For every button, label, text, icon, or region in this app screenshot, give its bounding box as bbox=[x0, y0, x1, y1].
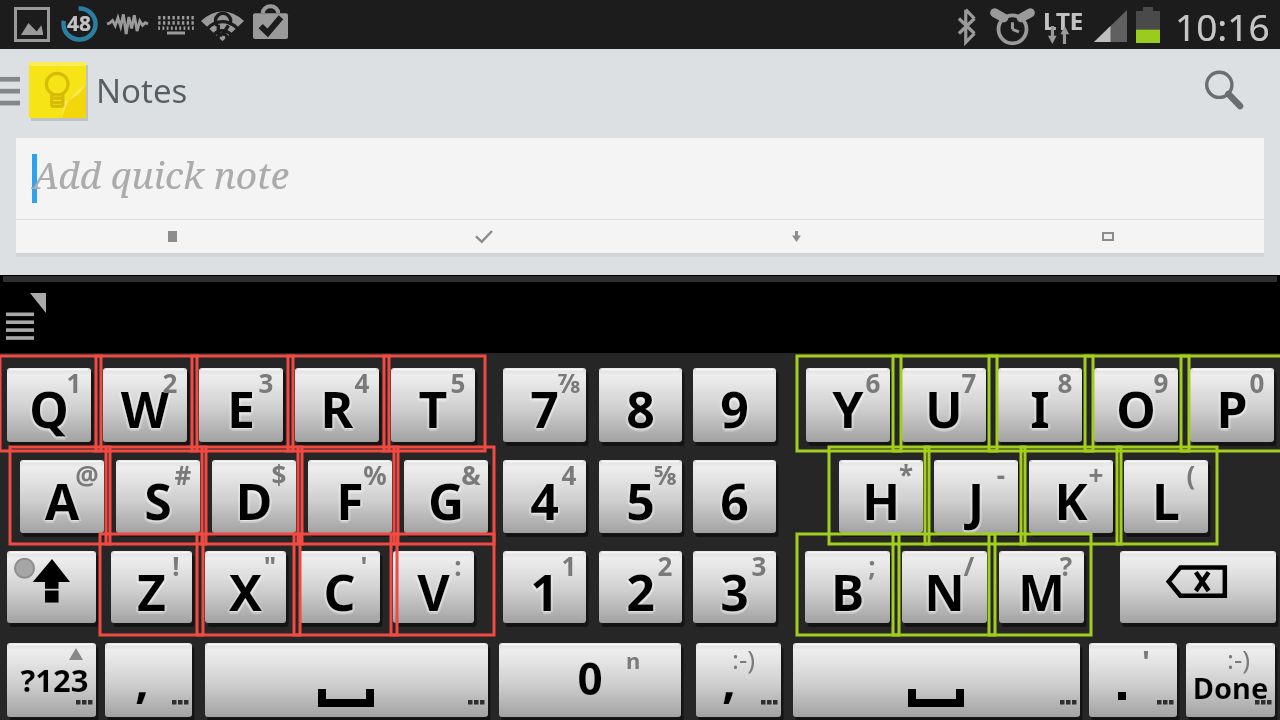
button[interactable]: N bbox=[902, 551, 987, 623]
button[interactable]: K bbox=[1029, 460, 1113, 533]
staticText: " bbox=[242, 548, 298, 583]
button[interactable]: commasm bbox=[696, 643, 781, 717]
button[interactable]: X bbox=[205, 551, 286, 623]
staticText: I bbox=[998, 375, 1082, 443]
staticText: Q bbox=[7, 378, 91, 446]
staticText: 6 bbox=[693, 467, 776, 535]
button[interactable]: F bbox=[308, 460, 392, 533]
staticText: 6 bbox=[691, 468, 774, 536]
button[interactable]: P bbox=[1190, 368, 1274, 442]
staticText: # bbox=[155, 457, 211, 492]
button[interactable]: U bbox=[902, 368, 986, 442]
button[interactable]: 9 bbox=[693, 368, 776, 442]
button[interactable]: 3 bbox=[693, 551, 776, 623]
staticText: W bbox=[101, 376, 185, 444]
button[interactable]: space bbox=[205, 643, 488, 717]
staticText: O bbox=[1096, 376, 1180, 444]
staticText: Z bbox=[111, 558, 192, 626]
staticText: % bbox=[347, 457, 403, 492]
staticText: Y bbox=[804, 376, 888, 444]
staticText: 7 bbox=[941, 365, 997, 400]
staticText: D bbox=[212, 470, 296, 538]
button[interactable]: H bbox=[839, 460, 923, 533]
button[interactable]: W bbox=[103, 368, 187, 442]
button[interactable]: S bbox=[116, 460, 200, 533]
staticText: K bbox=[1029, 467, 1113, 535]
staticText: W bbox=[103, 378, 187, 446]
staticText: ( bbox=[1163, 457, 1219, 492]
staticText: 5 bbox=[599, 467, 682, 535]
staticText: M bbox=[997, 559, 1082, 627]
staticText: ; bbox=[844, 548, 900, 583]
button[interactable]: 7 bbox=[503, 368, 586, 442]
button[interactable]: backspace bbox=[1120, 551, 1276, 623]
staticText: Z bbox=[113, 559, 194, 627]
button[interactable]: 6 bbox=[693, 460, 776, 533]
staticText: C bbox=[299, 561, 380, 629]
button[interactable]: 5 bbox=[599, 460, 682, 533]
staticText: A bbox=[20, 470, 104, 538]
button[interactable]: Open navigation drawer bbox=[0, 49, 34, 138]
button[interactable]: 4 bbox=[503, 460, 586, 533]
staticText: L bbox=[1126, 468, 1210, 536]
button[interactable]: comma bbox=[105, 643, 192, 717]
staticText: F bbox=[310, 468, 394, 536]
staticText: V bbox=[391, 559, 472, 627]
button[interactable]: Search bbox=[1185, 49, 1280, 138]
staticText: B bbox=[803, 559, 888, 627]
button[interactable]: M bbox=[999, 551, 1084, 623]
button[interactable]: 8 bbox=[599, 368, 682, 442]
button[interactable]: O bbox=[1094, 368, 1178, 442]
staticText: ' bbox=[1142, 641, 1150, 682]
button[interactable]: shift bbox=[7, 551, 96, 623]
staticText: Q bbox=[5, 376, 89, 444]
staticText: G bbox=[404, 467, 488, 535]
button[interactable]: Add quick note bbox=[16, 138, 1264, 219]
button[interactable]: V bbox=[393, 551, 474, 623]
button[interactable]: 1 bbox=[503, 551, 586, 623]
staticText: H bbox=[841, 468, 925, 536]
button[interactable]: ?123 bbox=[7, 643, 96, 717]
button[interactable]: E bbox=[199, 368, 283, 442]
staticText: Z bbox=[111, 561, 192, 629]
staticText: J bbox=[934, 470, 1018, 538]
staticText: 9 bbox=[691, 376, 774, 444]
button[interactable]: period bbox=[1089, 643, 1177, 717]
staticText: 8 bbox=[597, 376, 680, 444]
staticText: 2 bbox=[599, 561, 682, 629]
staticText: 5 bbox=[599, 470, 682, 538]
button[interactable]: Q bbox=[7, 368, 91, 442]
staticText: E bbox=[199, 375, 283, 443]
staticText: N bbox=[900, 559, 985, 627]
button[interactable]: space bbox=[793, 643, 1080, 717]
staticText: @ bbox=[59, 457, 115, 492]
staticText: R bbox=[293, 376, 377, 444]
button[interactable]: B bbox=[805, 551, 890, 623]
staticText: T bbox=[393, 376, 477, 444]
button[interactable]: J bbox=[934, 460, 1018, 533]
button[interactable]: G bbox=[404, 460, 488, 533]
staticText: M bbox=[999, 558, 1084, 626]
button[interactable]: T bbox=[391, 368, 475, 442]
staticText: 7 bbox=[503, 378, 586, 446]
staticText: 1 bbox=[505, 559, 588, 627]
button[interactable]: C bbox=[299, 551, 380, 623]
button[interactable]: D bbox=[212, 460, 296, 533]
button[interactable]: A bbox=[20, 460, 104, 533]
button[interactable]: New note bbox=[16, 220, 328, 253]
button[interactable]: Photo note bbox=[952, 220, 1264, 253]
button[interactable]: Done bbox=[1186, 643, 1275, 717]
button[interactable]: New list bbox=[328, 220, 640, 253]
button[interactable]: Z bbox=[111, 551, 192, 623]
button[interactable]: L bbox=[1124, 460, 1208, 533]
staticText: :-) bbox=[1227, 641, 1251, 676]
staticText: 7 bbox=[501, 376, 584, 444]
staticText: K bbox=[1027, 468, 1111, 536]
button[interactable]: R bbox=[295, 368, 379, 442]
button[interactable]: I bbox=[998, 368, 1082, 442]
button[interactable]: 0 bbox=[499, 643, 681, 717]
button[interactable]: Y bbox=[806, 368, 890, 442]
button[interactable]: Voice note bbox=[640, 220, 952, 253]
button[interactable]: 2 bbox=[599, 551, 682, 623]
staticText: V bbox=[393, 561, 474, 629]
